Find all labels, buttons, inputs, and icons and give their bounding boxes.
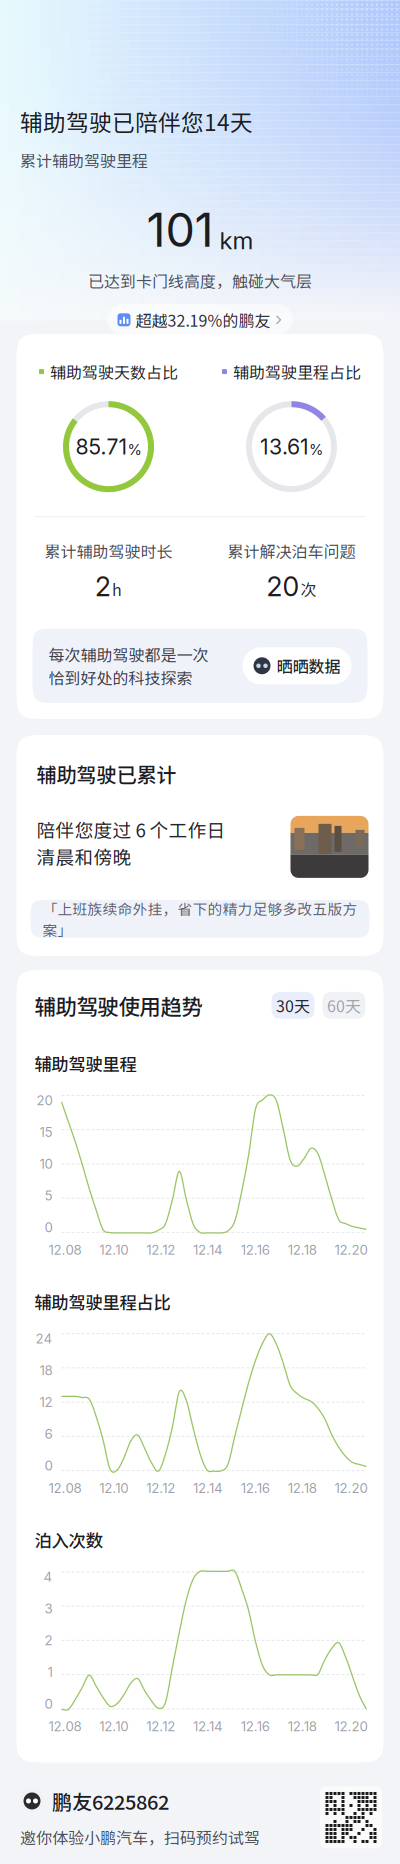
staticText: 0 [44, 1458, 52, 1474]
staticText: 辅助驾驶天数占比 [50, 360, 178, 383]
staticText: 5 [44, 1188, 52, 1204]
staticText: 超越32.19%的鹏友 [135, 308, 270, 331]
staticText: 6 [44, 1426, 52, 1442]
staticText: 10 [39, 1156, 52, 1172]
staticText: 鹏友6225862 [52, 1786, 169, 1815]
staticText: 12.12 [146, 1718, 175, 1734]
staticText: 1 [47, 1664, 52, 1680]
staticText: 60天 [327, 994, 361, 1017]
staticText: 12.20 [334, 1480, 367, 1496]
staticText: 12.14 [193, 1718, 223, 1734]
staticText: 辅助驾驶里程占比 [34, 1289, 170, 1314]
staticText: 12.08 [48, 1242, 81, 1258]
staticText: km [219, 226, 253, 255]
staticText: 12.16 [241, 1242, 270, 1258]
staticText: 12.10 [99, 1242, 128, 1258]
staticText: 辅助驾驶里程 [34, 1051, 136, 1076]
staticText: 101 [146, 202, 213, 258]
staticText: 次 [300, 577, 316, 601]
staticText: 12 [39, 1394, 52, 1410]
staticText: 累计辅助驾驶时长 [44, 539, 172, 562]
staticText: 12.18 [288, 1718, 317, 1734]
staticText: 12.20 [334, 1242, 367, 1258]
staticText: 24 [35, 1331, 52, 1347]
staticText: 2 [44, 1632, 52, 1648]
staticText: 累计辅助驾驶里程 [20, 148, 148, 172]
staticText: 12.10 [99, 1480, 128, 1496]
staticText: 12.16 [241, 1718, 270, 1734]
button[interactable]: 晒晒数据 [242, 647, 351, 684]
staticText: 12.08 [48, 1718, 81, 1734]
button[interactable]: 超越32.19%的鹏友 [107, 304, 292, 335]
staticText: 85.71 [75, 434, 127, 460]
staticText: 20 [36, 1092, 52, 1108]
staticText: 12.18 [288, 1480, 317, 1496]
staticText: 每次辅助驾驶都是一次恰到好处的科技探索 [48, 643, 208, 689]
staticText: 3 [44, 1600, 52, 1617]
staticText: 邀你体验小鹏汽车，扫码预约试驾 [20, 1825, 260, 1849]
staticText: 12.14 [193, 1242, 223, 1258]
staticText: 0 [44, 1696, 52, 1712]
button[interactable]: 60天 [322, 992, 365, 1019]
staticText: 12.10 [99, 1718, 128, 1734]
staticText: 2 [95, 570, 111, 603]
staticText: 13.61 [260, 434, 309, 460]
staticText: 12.12 [146, 1242, 175, 1258]
staticText: 辅助驾驶里程占比 [233, 360, 361, 383]
staticText: 已达到卡门线高度，触碰大气层 [88, 269, 312, 292]
staticText: 18 [39, 1362, 52, 1378]
staticText: 0 [44, 1219, 52, 1235]
staticText: 「上班族续命外挂，省下的精力足够多改五版方案」 [42, 898, 357, 940]
staticText: 4 [43, 1569, 52, 1585]
staticText: 陪伴您度过 6 个工作日清晨和傍晚 [36, 816, 225, 870]
staticText: 12.18 [288, 1242, 317, 1258]
staticText: % [127, 441, 141, 458]
staticText: 12.20 [334, 1718, 367, 1734]
staticText: 累计解决泊车问题 [227, 539, 355, 562]
staticText: 12.08 [48, 1480, 81, 1496]
staticText: 15 [39, 1124, 52, 1140]
staticText: 辅助驾驶已累计 [36, 759, 176, 788]
staticText: 20 [266, 570, 299, 603]
staticText: 12.16 [241, 1480, 270, 1496]
staticText: 辅助驾驶使用趋势 [34, 990, 202, 1021]
staticText: 晒晒数据 [276, 654, 340, 677]
button[interactable]: 30天 [271, 992, 314, 1019]
staticText: % [309, 441, 323, 458]
staticText: h [112, 577, 122, 601]
staticText: 泊入次数 [34, 1527, 102, 1552]
staticText: 12.12 [146, 1480, 175, 1496]
staticText: 辅助驾驶已陪伴您14天 [20, 105, 253, 137]
staticText: 12.14 [193, 1480, 223, 1496]
staticText: 30天 [276, 994, 310, 1017]
